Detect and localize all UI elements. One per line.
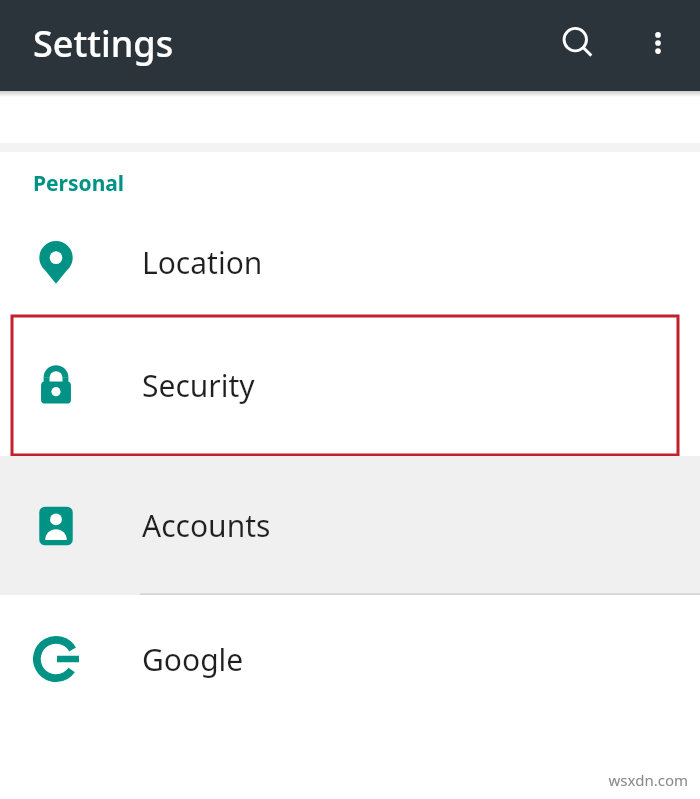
staticText: Settings (33, 19, 174, 68)
staticText: Google (142, 639, 244, 680)
staticText: Personal (33, 169, 125, 198)
staticText: Accounts (142, 505, 271, 546)
button[interactable]: Search (550, 15, 606, 71)
button[interactable]: More options (630, 15, 686, 71)
staticText: Location (142, 242, 263, 283)
staticText: wsxdn.com (608, 770, 688, 790)
button[interactable]: Security (0, 315, 700, 456)
staticText: Security (142, 365, 255, 406)
button[interactable]: Accounts (0, 456, 700, 595)
button[interactable]: Google (0, 595, 700, 723)
button[interactable]: Location (0, 210, 700, 315)
